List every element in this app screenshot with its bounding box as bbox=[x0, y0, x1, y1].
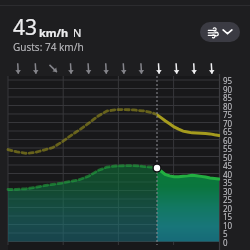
staticText: N bbox=[73, 25, 82, 40]
staticText: 95 bbox=[223, 75, 233, 86]
staticText: 70 bbox=[223, 118, 233, 129]
staticText: 43 bbox=[13, 13, 38, 42]
staticText: 60 bbox=[223, 135, 233, 146]
staticText: 50 bbox=[223, 152, 233, 163]
staticText: 80 bbox=[223, 101, 233, 112]
staticText: 35 bbox=[223, 177, 233, 188]
staticText: Gusts: 74 km/h bbox=[13, 40, 84, 54]
staticText: 10 bbox=[223, 220, 233, 231]
staticText: 85 bbox=[223, 92, 233, 103]
staticText: 45 bbox=[223, 160, 233, 171]
staticText: 25 bbox=[223, 194, 233, 205]
staticText: 20 bbox=[223, 203, 233, 214]
staticText: 5 bbox=[223, 228, 228, 239]
staticText: km/h bbox=[39, 25, 69, 40]
staticText: 30 bbox=[223, 186, 233, 197]
staticText: 90 bbox=[223, 84, 233, 95]
staticText: 40 bbox=[223, 169, 233, 180]
button[interactable]: Wind layer bbox=[200, 22, 240, 42]
staticText: 75 bbox=[223, 109, 233, 120]
staticText: 0 bbox=[223, 237, 228, 248]
staticText: 15 bbox=[223, 211, 233, 222]
staticText: 65 bbox=[223, 126, 233, 137]
staticText: 55 bbox=[223, 143, 233, 154]
